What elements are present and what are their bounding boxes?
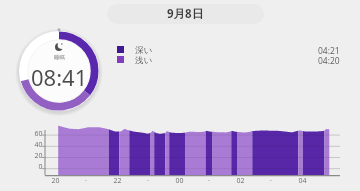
staticText: 20 xyxy=(51,176,60,186)
staticText: 浅い xyxy=(135,55,153,64)
staticText: 04:20 xyxy=(318,55,340,64)
staticText: 睡眠 xyxy=(54,54,65,61)
staticText: · xyxy=(147,176,149,186)
staticText: · xyxy=(208,176,210,186)
staticText: 40 xyxy=(34,140,43,150)
staticText: · xyxy=(270,176,272,186)
staticText: 深い xyxy=(135,45,153,54)
staticText: 22 xyxy=(113,176,122,186)
button[interactable]: 浅い xyxy=(114,55,340,64)
staticText: · xyxy=(85,176,87,186)
button[interactable]: 深い xyxy=(114,45,340,54)
staticText: 08:41 xyxy=(31,62,88,92)
staticText: 02 xyxy=(236,176,245,186)
staticText: 60 xyxy=(34,129,43,139)
staticText: 04:21 xyxy=(318,45,340,54)
staticText: 20 xyxy=(34,151,43,161)
staticText: 9月8日 xyxy=(167,6,204,22)
button[interactable]: 9月8日 xyxy=(107,4,264,24)
staticText: 0 xyxy=(38,162,43,172)
staticText: 04 xyxy=(298,176,307,186)
staticText: 00 xyxy=(175,176,184,186)
